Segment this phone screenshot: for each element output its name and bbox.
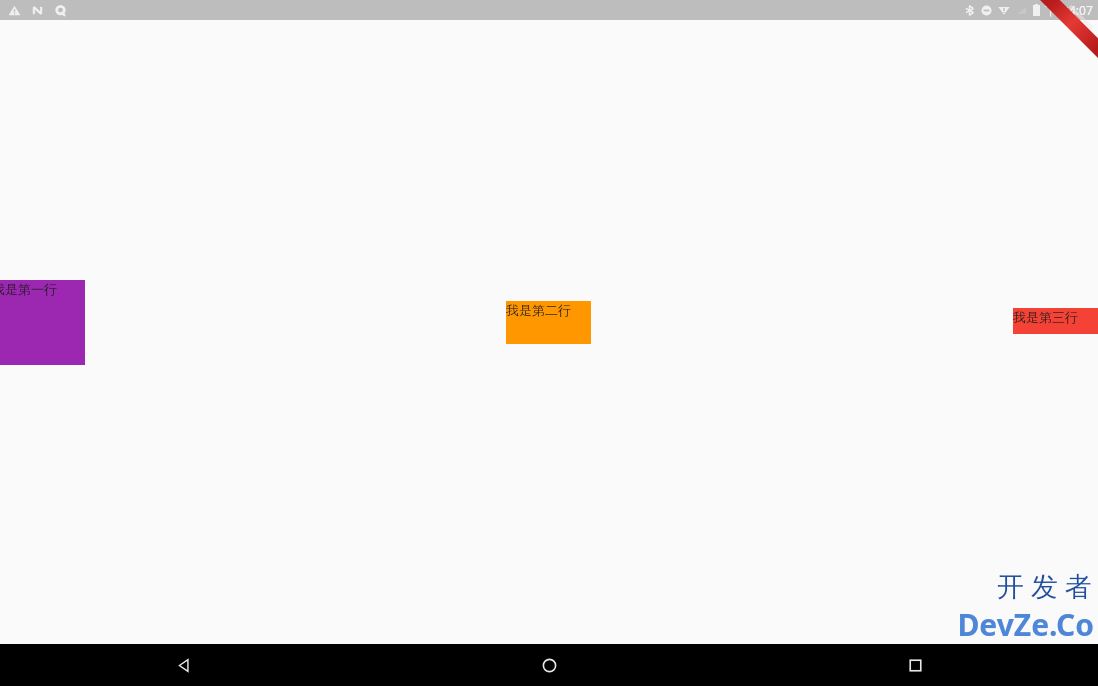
staticText: 下午4:07 — [1045, 2, 1093, 18]
staticText: 我是第一行 — [0, 281, 57, 297]
button[interactable]: Back — [0, 644, 366, 686]
button[interactable]: 我是第三行 — [1013, 308, 1098, 334]
button[interactable]: Recent apps — [732, 644, 1098, 686]
button[interactable]: 我是第二行 — [506, 301, 591, 344]
staticText: 我是第二行 — [506, 302, 571, 318]
staticText: 我是第三行 — [1013, 309, 1078, 325]
staticText: 开 发 者 — [996, 567, 1092, 604]
staticText: DevZe.CoM — [940, 604, 1094, 686]
button[interactable]: 我是第一行 — [0, 280, 85, 365]
button[interactable]: Home — [366, 644, 732, 686]
